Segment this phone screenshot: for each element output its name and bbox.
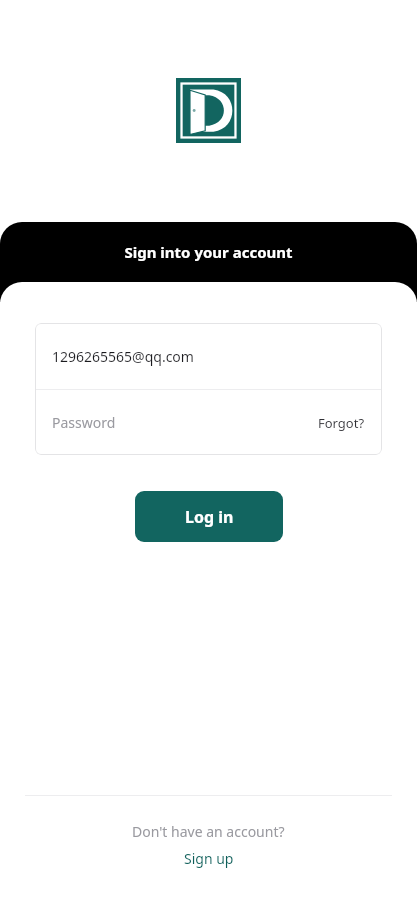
staticText: Forgot? [318,414,365,432]
staticText: 1296265565@qq.com [52,347,194,366]
staticText: Don't have an account? [132,822,285,841]
staticText: Password [52,413,116,432]
button[interactable]: Forgot? [318,414,365,432]
button[interactable]: Log in [135,491,283,542]
button[interactable]: Sign up [184,849,234,868]
staticText: Sign up [184,849,234,868]
staticText: Log in [185,506,234,528]
button[interactable]: 1296265565@qq.com [35,323,382,389]
button[interactable]: Password [35,390,382,455]
staticText: Sign into your account [0,242,417,262]
